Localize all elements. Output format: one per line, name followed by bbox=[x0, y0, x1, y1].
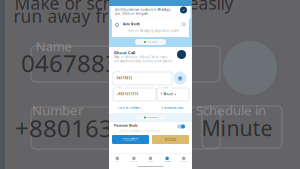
staticText: ▣ bbox=[177, 75, 182, 81]
staticText: Identify unknown numbers in WhatsApp, bbox=[114, 8, 171, 11]
staticText: Auto Search bbox=[123, 22, 140, 26]
staticText: Calls bbox=[116, 161, 119, 162]
button[interactable]: ◷ bbox=[155, 104, 189, 111]
staticText: 1 Minute bbox=[183, 114, 272, 142]
staticText: PICK A CONTACT bbox=[118, 106, 142, 109]
button[interactable]: Premium bbox=[159, 154, 175, 164]
staticText: Ghost Call bbox=[114, 50, 135, 55]
staticText: Ads by Google bbox=[147, 117, 157, 118]
staticText: SCHEDULE CALL bbox=[164, 106, 183, 109]
staticText: Line, Viber or Telegram bbox=[114, 12, 147, 15]
staticText: Messages bbox=[130, 161, 138, 162]
staticText: Get 3 months FREE bbox=[124, 139, 136, 141]
button[interactable]: Recording bbox=[175, 154, 192, 164]
staticText: run away from reality, boring conversati… bbox=[114, 59, 172, 63]
staticText: Upgrade to Gold bbox=[164, 138, 176, 139]
button[interactable]: Change to unlimited Pro bbox=[112, 135, 149, 144]
staticText: Number bbox=[32, 101, 84, 119]
staticText: GET 4,000 Entries bbox=[164, 139, 176, 141]
staticText: Number bbox=[116, 87, 122, 89]
button[interactable]: PICK A CONTACT bbox=[115, 104, 145, 111]
staticText: Contacts bbox=[147, 161, 153, 162]
staticText: Schedule in bbox=[160, 87, 168, 89]
staticText: 04678832 bbox=[21, 47, 133, 79]
staticText: +8801631910 bbox=[116, 92, 138, 96]
staticText: Name bbox=[116, 71, 120, 73]
staticText: Make or schedule bbox=[14, 0, 159, 14]
staticText: Schedule in bbox=[196, 101, 266, 119]
staticText: Turn on Messaging Apps Auto search bbox=[128, 29, 179, 32]
staticText: Change to unlimited Pro bbox=[122, 138, 139, 139]
button[interactable]: Calls bbox=[109, 154, 126, 164]
staticText: +8801631910 bbox=[15, 112, 169, 144]
staticText: Your gold subscription will be processed… bbox=[120, 130, 160, 132]
staticText: Make or schedule a Ghost Call to easily bbox=[114, 55, 167, 59]
staticText: Premium bbox=[164, 161, 170, 162]
staticText: 1 Minute ▾ bbox=[160, 92, 175, 96]
staticText: ✓ bbox=[182, 8, 185, 12]
staticText: easily bbox=[188, 0, 233, 14]
staticText: Name bbox=[35, 37, 72, 55]
staticText: run away from rea bbox=[13, 4, 166, 27]
staticText: Ads by Google bbox=[147, 41, 157, 43]
staticText: Premium Mode bbox=[114, 124, 138, 127]
button[interactable]: Messages bbox=[126, 154, 142, 164]
staticText: ◷ bbox=[161, 106, 163, 109]
button[interactable]: Upgrade to Gold bbox=[152, 135, 189, 144]
staticText: Recording bbox=[180, 161, 188, 162]
button[interactable]: Contacts bbox=[142, 154, 159, 164]
staticText: 04678832 bbox=[116, 76, 132, 80]
